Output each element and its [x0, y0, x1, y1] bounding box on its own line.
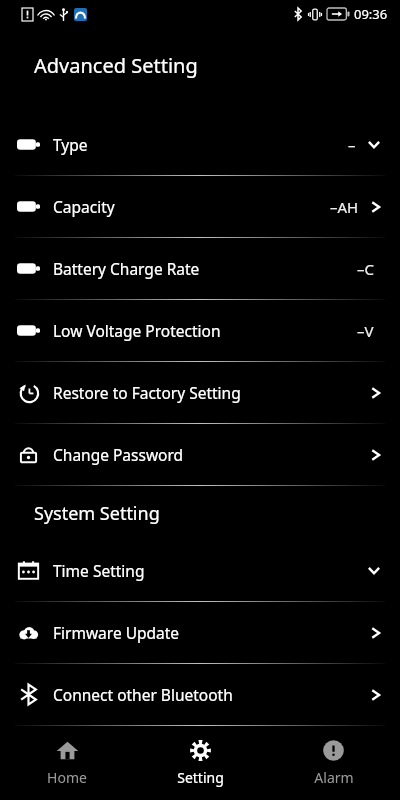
- staticText: Restore to Factory Setting: [53, 382, 241, 403]
- staticText: Type: [53, 134, 88, 155]
- button[interactable]: Battery Charge Rate: [0, 238, 400, 299]
- staticText: Low Voltage Protection: [53, 320, 221, 341]
- staticText: –V: [357, 321, 374, 341]
- button[interactable]: Alarm: [267, 731, 400, 795]
- button[interactable]: Firmware Update: [0, 602, 400, 663]
- button[interactable]: Low Voltage Protection: [0, 300, 400, 361]
- button[interactable]: Type: [0, 114, 400, 175]
- staticText: Alarm: [314, 768, 354, 787]
- button[interactable]: Capacity: [0, 176, 400, 237]
- staticText: Advanced Setting: [34, 52, 198, 79]
- staticText: –AH: [330, 197, 359, 217]
- staticText: Home: [47, 768, 87, 787]
- button[interactable]: Time Setting: [0, 540, 400, 601]
- staticText: Time Setting: [53, 560, 145, 581]
- staticText: Connect other Bluetooth: [53, 684, 233, 705]
- staticText: –C: [357, 259, 374, 279]
- staticText: Firmware Update: [53, 622, 180, 643]
- button[interactable]: Change Password: [0, 424, 400, 485]
- staticText: Battery Charge Rate: [53, 258, 200, 279]
- staticText: System Setting: [34, 501, 160, 526]
- button[interactable]: Restore to Factory Setting: [0, 362, 400, 423]
- staticText: –: [348, 135, 356, 155]
- button[interactable]: Home: [0, 731, 134, 795]
- staticText: Setting: [177, 768, 224, 787]
- button[interactable]: Connect other Bluetooth: [0, 664, 400, 725]
- staticText: 09:36: [354, 5, 388, 23]
- staticText: Change Password: [53, 444, 184, 465]
- staticText: Capacity: [53, 196, 115, 217]
- button[interactable]: Setting: [134, 731, 267, 795]
